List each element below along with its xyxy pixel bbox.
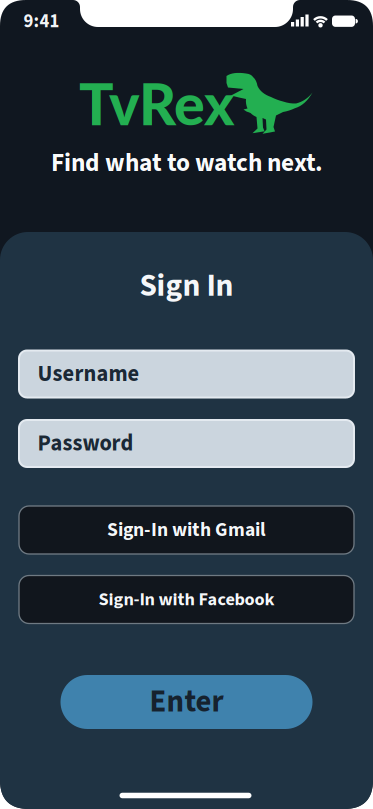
staticText: Username (37, 358, 139, 390)
button[interactable]: Password (19, 420, 354, 467)
staticText: 9:41 (23, 8, 59, 35)
button[interactable]: Sign-In with Gmail (19, 506, 354, 554)
staticText: Sign-In with Gmail (107, 516, 266, 544)
staticText: Enter (149, 680, 223, 724)
staticText: Find what to watch next. (51, 145, 323, 181)
staticText: Password (37, 428, 133, 459)
staticText: Sign-In with Facebook (98, 586, 274, 612)
button[interactable]: Username (19, 350, 354, 397)
button[interactable]: Sign-In with Facebook (19, 575, 354, 623)
button[interactable]: Enter (60, 675, 312, 729)
staticText: TvRex (79, 69, 235, 137)
staticText: Sign In (139, 264, 233, 308)
